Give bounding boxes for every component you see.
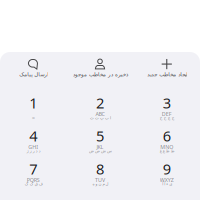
staticText: ط ظ ع غ (159, 149, 174, 153)
staticText: ا ب پ ت ث (89, 116, 110, 120)
staticText: س ش ص ض (88, 149, 111, 153)
staticText: ج چ ح خ (159, 116, 174, 120)
staticText: 1 (29, 93, 37, 112)
button[interactable]: Send message (0, 58, 67, 78)
staticText: 7 (29, 159, 37, 178)
button[interactable]: 9 (133, 159, 200, 186)
staticText: JKL (96, 143, 103, 151)
staticText: د ذ ر ز ژ (26, 149, 40, 153)
staticText: 4 (29, 126, 37, 145)
staticText: ف ق ک گ (24, 182, 42, 186)
staticText: MNO (160, 143, 173, 151)
button[interactable]: 4 (0, 126, 67, 153)
staticText: 8 (96, 159, 104, 178)
staticText: TUV (95, 176, 105, 184)
staticText: ABC (95, 110, 104, 118)
staticText: 9 (163, 159, 171, 178)
button[interactable]: 2 (67, 93, 133, 120)
staticText: ارسال پیامک (19, 71, 48, 78)
staticText: WXYZ (160, 176, 174, 184)
staticText: PQRS (27, 176, 40, 184)
staticText: GHI (28, 143, 38, 151)
staticText: ایجاد مخاطب جدید (147, 71, 187, 78)
button[interactable]: 1 (0, 93, 67, 120)
button[interactable]: Add to existing contact (67, 58, 133, 78)
button[interactable]: 5 (67, 126, 133, 153)
staticText: ی ء آ أ (162, 182, 172, 186)
button[interactable]: Create new contact (133, 58, 200, 78)
button[interactable]: 3 (133, 93, 200, 120)
staticText: ذخیره در مخاطب موجود (72, 71, 127, 78)
staticText: 6 (163, 126, 171, 145)
staticText: ∞ (32, 116, 35, 120)
staticText: 5 (96, 126, 104, 145)
staticText: ل م ن و ه (92, 182, 108, 186)
staticText: 3 (163, 93, 171, 112)
staticText: 2 (96, 93, 104, 112)
staticText: DEF (162, 110, 172, 118)
button[interactable]: 7 (0, 159, 67, 186)
button[interactable]: 8 (67, 159, 133, 186)
button[interactable]: 6 (133, 126, 200, 153)
